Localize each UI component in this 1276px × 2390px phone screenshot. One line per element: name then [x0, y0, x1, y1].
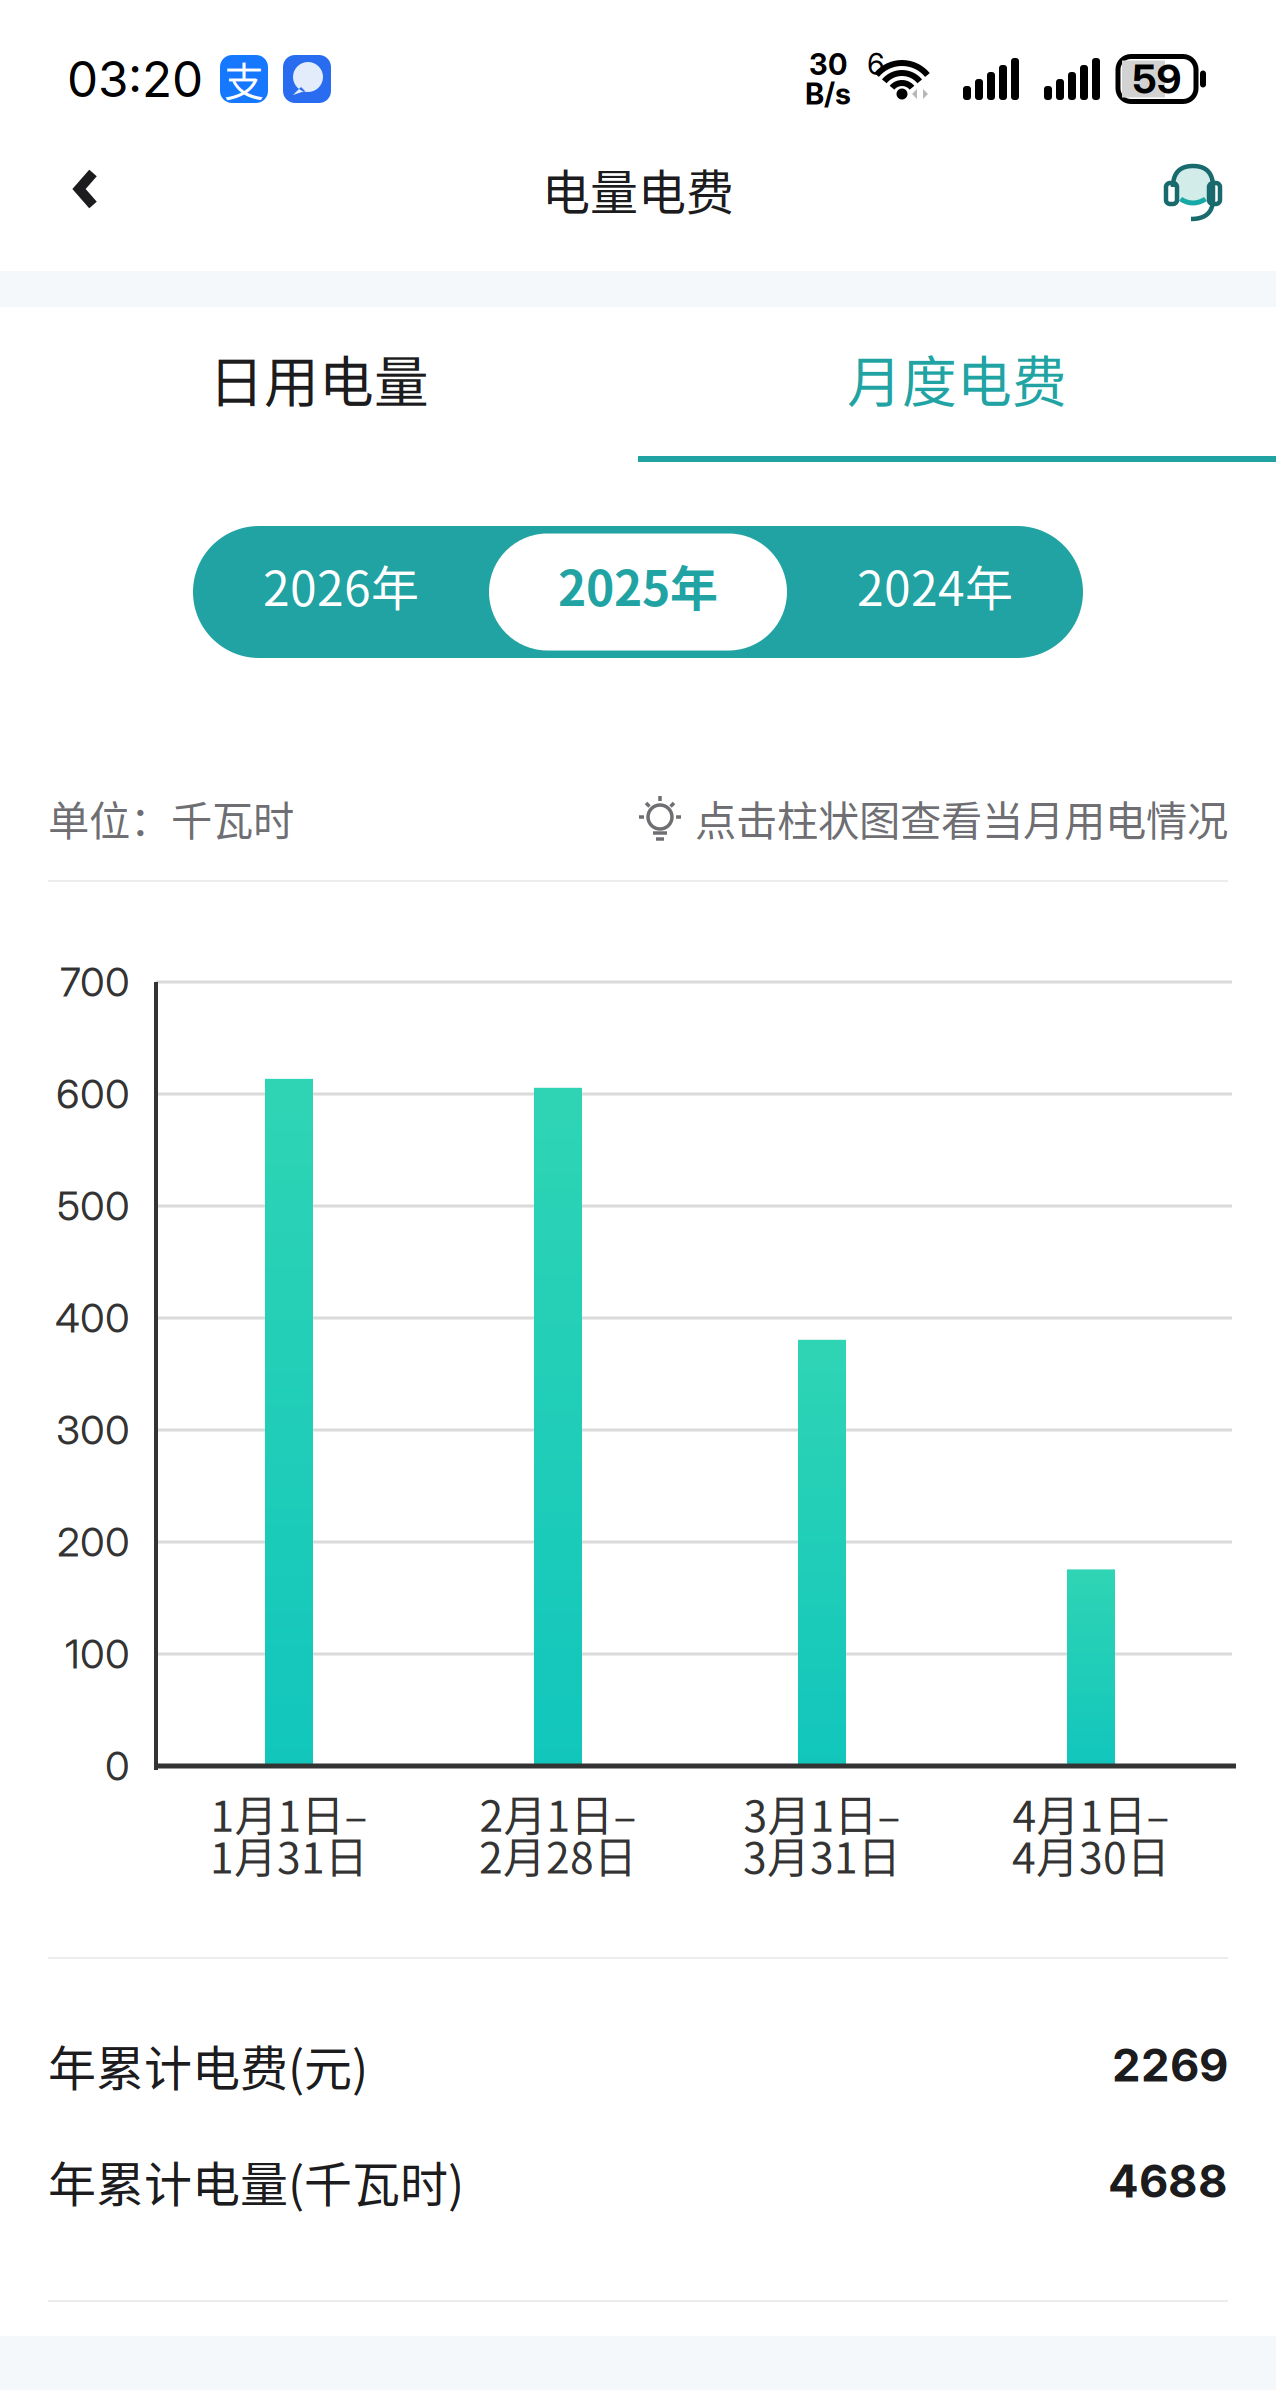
staticText: 30	[809, 46, 847, 82]
staticText: 年累计电费(元)	[48, 2030, 368, 2100]
staticText: 300	[56, 1406, 130, 1454]
staticText: 6	[867, 46, 885, 82]
staticText: 0	[105, 1742, 130, 1790]
staticText: 1月31日	[210, 1824, 368, 1886]
button[interactable]: 2025年	[489, 533, 787, 650]
staticText: 2月1日–	[479, 1782, 636, 1844]
staticText: 600	[56, 1070, 130, 1118]
staticText: 2026年	[263, 550, 419, 620]
staticText: 100	[65, 1630, 130, 1678]
staticText: 单位：千瓦时	[48, 788, 294, 848]
staticText: 1月1日–	[210, 1782, 367, 1844]
button[interactable]: Back	[38, 129, 134, 249]
button[interactable]: 2月	[534, 1088, 582, 1766]
staticText: 2025年	[558, 550, 718, 620]
button[interactable]: 月度电费	[638, 296, 1276, 476]
staticText: 月度电费	[847, 338, 1067, 418]
button[interactable]: 点击柱状图查看当月用电情况	[639, 788, 1228, 848]
staticText: 2269	[1112, 2038, 1228, 2092]
button[interactable]: Customer service	[1138, 129, 1248, 249]
staticText: 4月1日–	[1012, 1782, 1169, 1844]
staticText: 200	[57, 1518, 130, 1566]
staticText: 400	[55, 1294, 130, 1342]
button[interactable]: 2026年	[193, 526, 489, 658]
staticText: 支	[224, 50, 264, 108]
staticText: 59	[1132, 55, 1181, 103]
staticText: 3月1日–	[743, 1782, 900, 1844]
staticText: 点击柱状图查看当月用电情况	[695, 788, 1228, 848]
staticText: 电量电费	[542, 154, 734, 224]
button[interactable]: 3月	[798, 1340, 846, 1766]
staticText: 2024年	[857, 550, 1013, 620]
staticText: 4月30日	[1012, 1824, 1170, 1886]
staticText: 700	[60, 958, 130, 1006]
button[interactable]: 1月	[265, 1079, 313, 1766]
staticText: B/s	[805, 76, 851, 111]
staticText: 3月31日	[743, 1824, 901, 1886]
button[interactable]: 4月	[1067, 1570, 1115, 1766]
staticText: 年累计电量(千瓦时)	[48, 2146, 464, 2216]
staticText: 2月28日	[479, 1824, 637, 1886]
button[interactable]: 2024年	[787, 526, 1083, 658]
staticText: 03:20	[67, 49, 203, 109]
staticText: 500	[57, 1182, 130, 1230]
staticText: 4688	[1108, 2154, 1228, 2208]
staticText: 日用电量	[209, 338, 429, 418]
button[interactable]: 日用电量	[0, 296, 638, 476]
